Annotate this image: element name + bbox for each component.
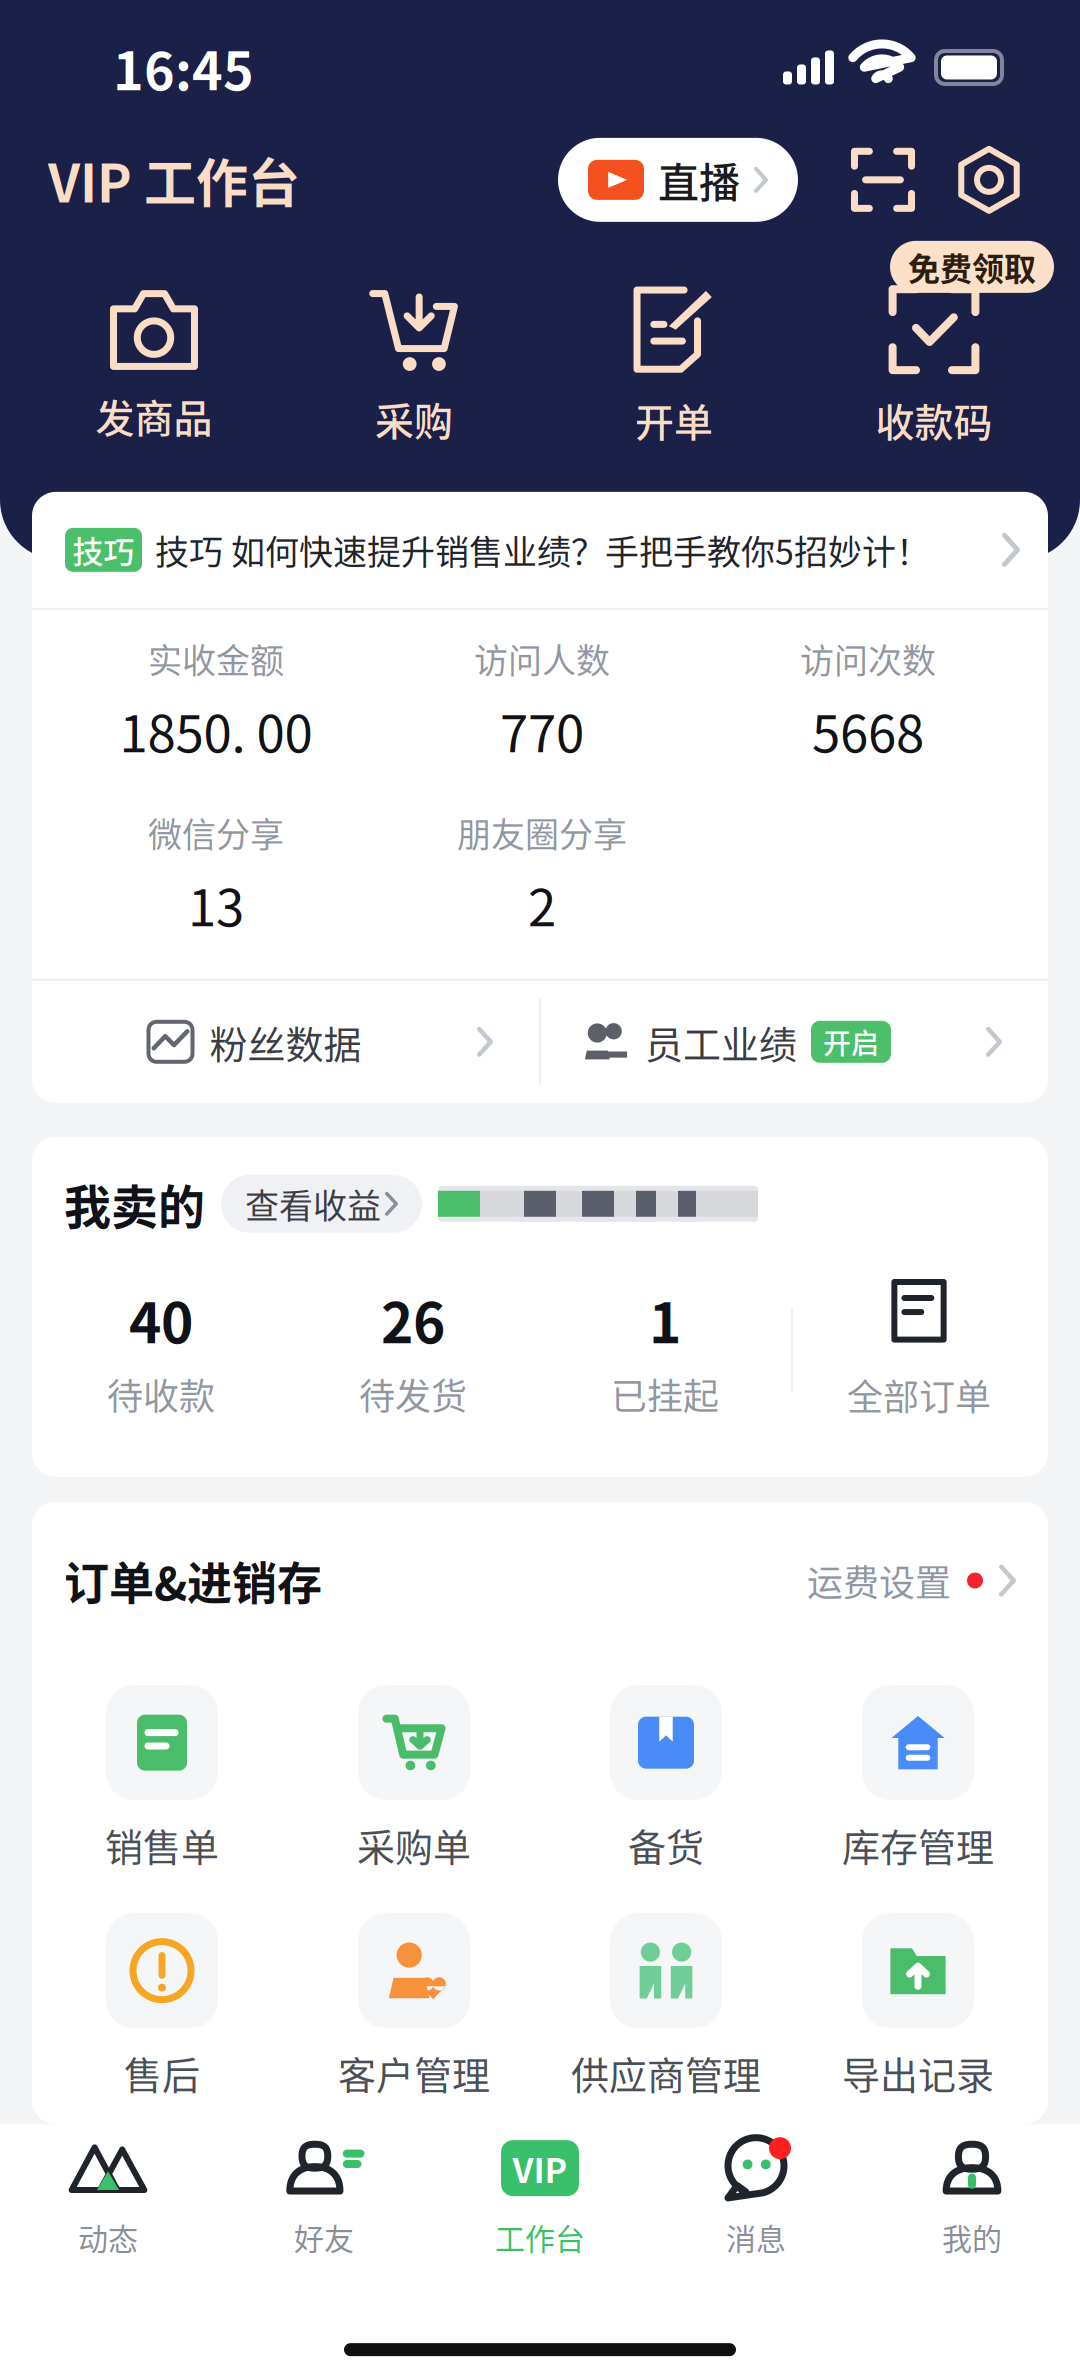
button[interactable]: 直播: [558, 138, 798, 222]
staticText: 开单: [635, 392, 713, 448]
staticText: 粉丝数据: [209, 1014, 361, 1069]
button[interactable]: 我的: [864, 2124, 1080, 2292]
staticText: 我卖的: [64, 1170, 205, 1238]
staticText: 库存管理: [842, 1817, 994, 1872]
button[interactable]: 售后: [36, 1913, 288, 2108]
button[interactable]: 查看收益: [221, 1175, 422, 1233]
button[interactable]: 运费设置: [807, 1554, 1016, 1607]
staticText: 销售单: [105, 1817, 219, 1872]
staticText: 2: [528, 867, 556, 941]
button[interactable]: 扫一扫: [842, 139, 924, 221]
staticText: 待收款: [107, 1368, 215, 1420]
button[interactable]: 收款码: [804, 273, 1064, 461]
button[interactable]: VIP: [432, 2124, 648, 2292]
staticText: 微信分享: [148, 808, 284, 857]
staticText: 5668: [812, 693, 924, 767]
button[interactable]: 采购: [284, 273, 544, 461]
staticText: 16:45: [113, 30, 254, 105]
staticText: 员工业绩: [645, 1014, 797, 1069]
staticText: 技巧: [72, 527, 134, 572]
button[interactable]: 员工业绩: [541, 981, 1048, 1103]
staticText: 好友: [294, 2215, 354, 2259]
button[interactable]: 消息: [648, 2124, 864, 2292]
button[interactable]: 开单: [544, 273, 804, 461]
staticText: 动态: [78, 2215, 138, 2259]
button[interactable]: 好友: [216, 2124, 432, 2292]
staticText: 采购: [375, 391, 453, 447]
staticText: VIP 工作台: [48, 142, 300, 217]
button[interactable]: 1: [539, 1279, 791, 1420]
staticText: 1: [649, 1279, 681, 1359]
staticText: 订单&进销存: [64, 1548, 322, 1613]
staticText: 技巧 如何快速提升销售业绩？手把手教你5招妙计！: [155, 525, 930, 574]
staticText: 我的: [942, 2215, 1002, 2259]
button[interactable]: 采购单: [288, 1685, 540, 1880]
staticText: 收款码: [875, 392, 992, 448]
staticText: 消息: [726, 2215, 786, 2259]
staticText: 开启: [823, 1021, 879, 1062]
button[interactable]: 26: [287, 1279, 539, 1420]
staticText: 导出记录: [842, 2045, 994, 2100]
staticText: 查看收益: [245, 1179, 381, 1228]
staticText: 1850. 00: [119, 693, 312, 767]
button[interactable]: 设置: [946, 137, 1032, 223]
button[interactable]: 动态: [0, 2124, 216, 2292]
staticText: 售后: [124, 2045, 200, 2100]
staticText: 朋友圈分享: [457, 808, 627, 857]
staticText: 运费设置: [807, 1554, 951, 1607]
button[interactable]: 供应商管理: [540, 1913, 792, 2108]
staticText: VIP: [512, 2143, 567, 2193]
staticText: 访问次数: [800, 634, 936, 683]
staticText: 待发货: [359, 1368, 467, 1420]
staticText: 已挂起: [611, 1368, 719, 1420]
button[interactable]: 发商品: [24, 273, 284, 461]
staticText: 全部订单: [847, 1369, 991, 1421]
staticText: 770: [500, 693, 584, 767]
button[interactable]: 40: [35, 1279, 287, 1420]
staticText: 实收金额: [148, 634, 284, 683]
button[interactable]: 客户管理: [288, 1913, 540, 2108]
button[interactable]: 技巧: [32, 492, 1048, 608]
staticText: 26: [381, 1279, 445, 1359]
staticText: 访问人数: [474, 634, 610, 683]
button[interactable]: 备货: [540, 1685, 792, 1880]
button[interactable]: 销售单: [36, 1685, 288, 1880]
staticText: 发商品: [95, 388, 212, 444]
staticText: 备货: [628, 1817, 704, 1872]
button[interactable]: 库存管理: [792, 1685, 1044, 1880]
staticText: 工作台: [495, 2215, 585, 2259]
staticText: 40: [129, 1279, 193, 1359]
staticText: 免费领取: [908, 244, 1036, 290]
button[interactable]: 全部订单: [793, 1279, 1045, 1421]
button[interactable]: 导出记录: [792, 1913, 1044, 2108]
staticText: 客户管理: [338, 2045, 490, 2100]
staticText: 13: [188, 867, 244, 941]
staticText: 供应商管理: [571, 2045, 761, 2100]
staticText: 直播: [658, 150, 740, 210]
staticText: 采购单: [357, 1817, 471, 1872]
button[interactable]: 粉丝数据: [32, 981, 539, 1103]
